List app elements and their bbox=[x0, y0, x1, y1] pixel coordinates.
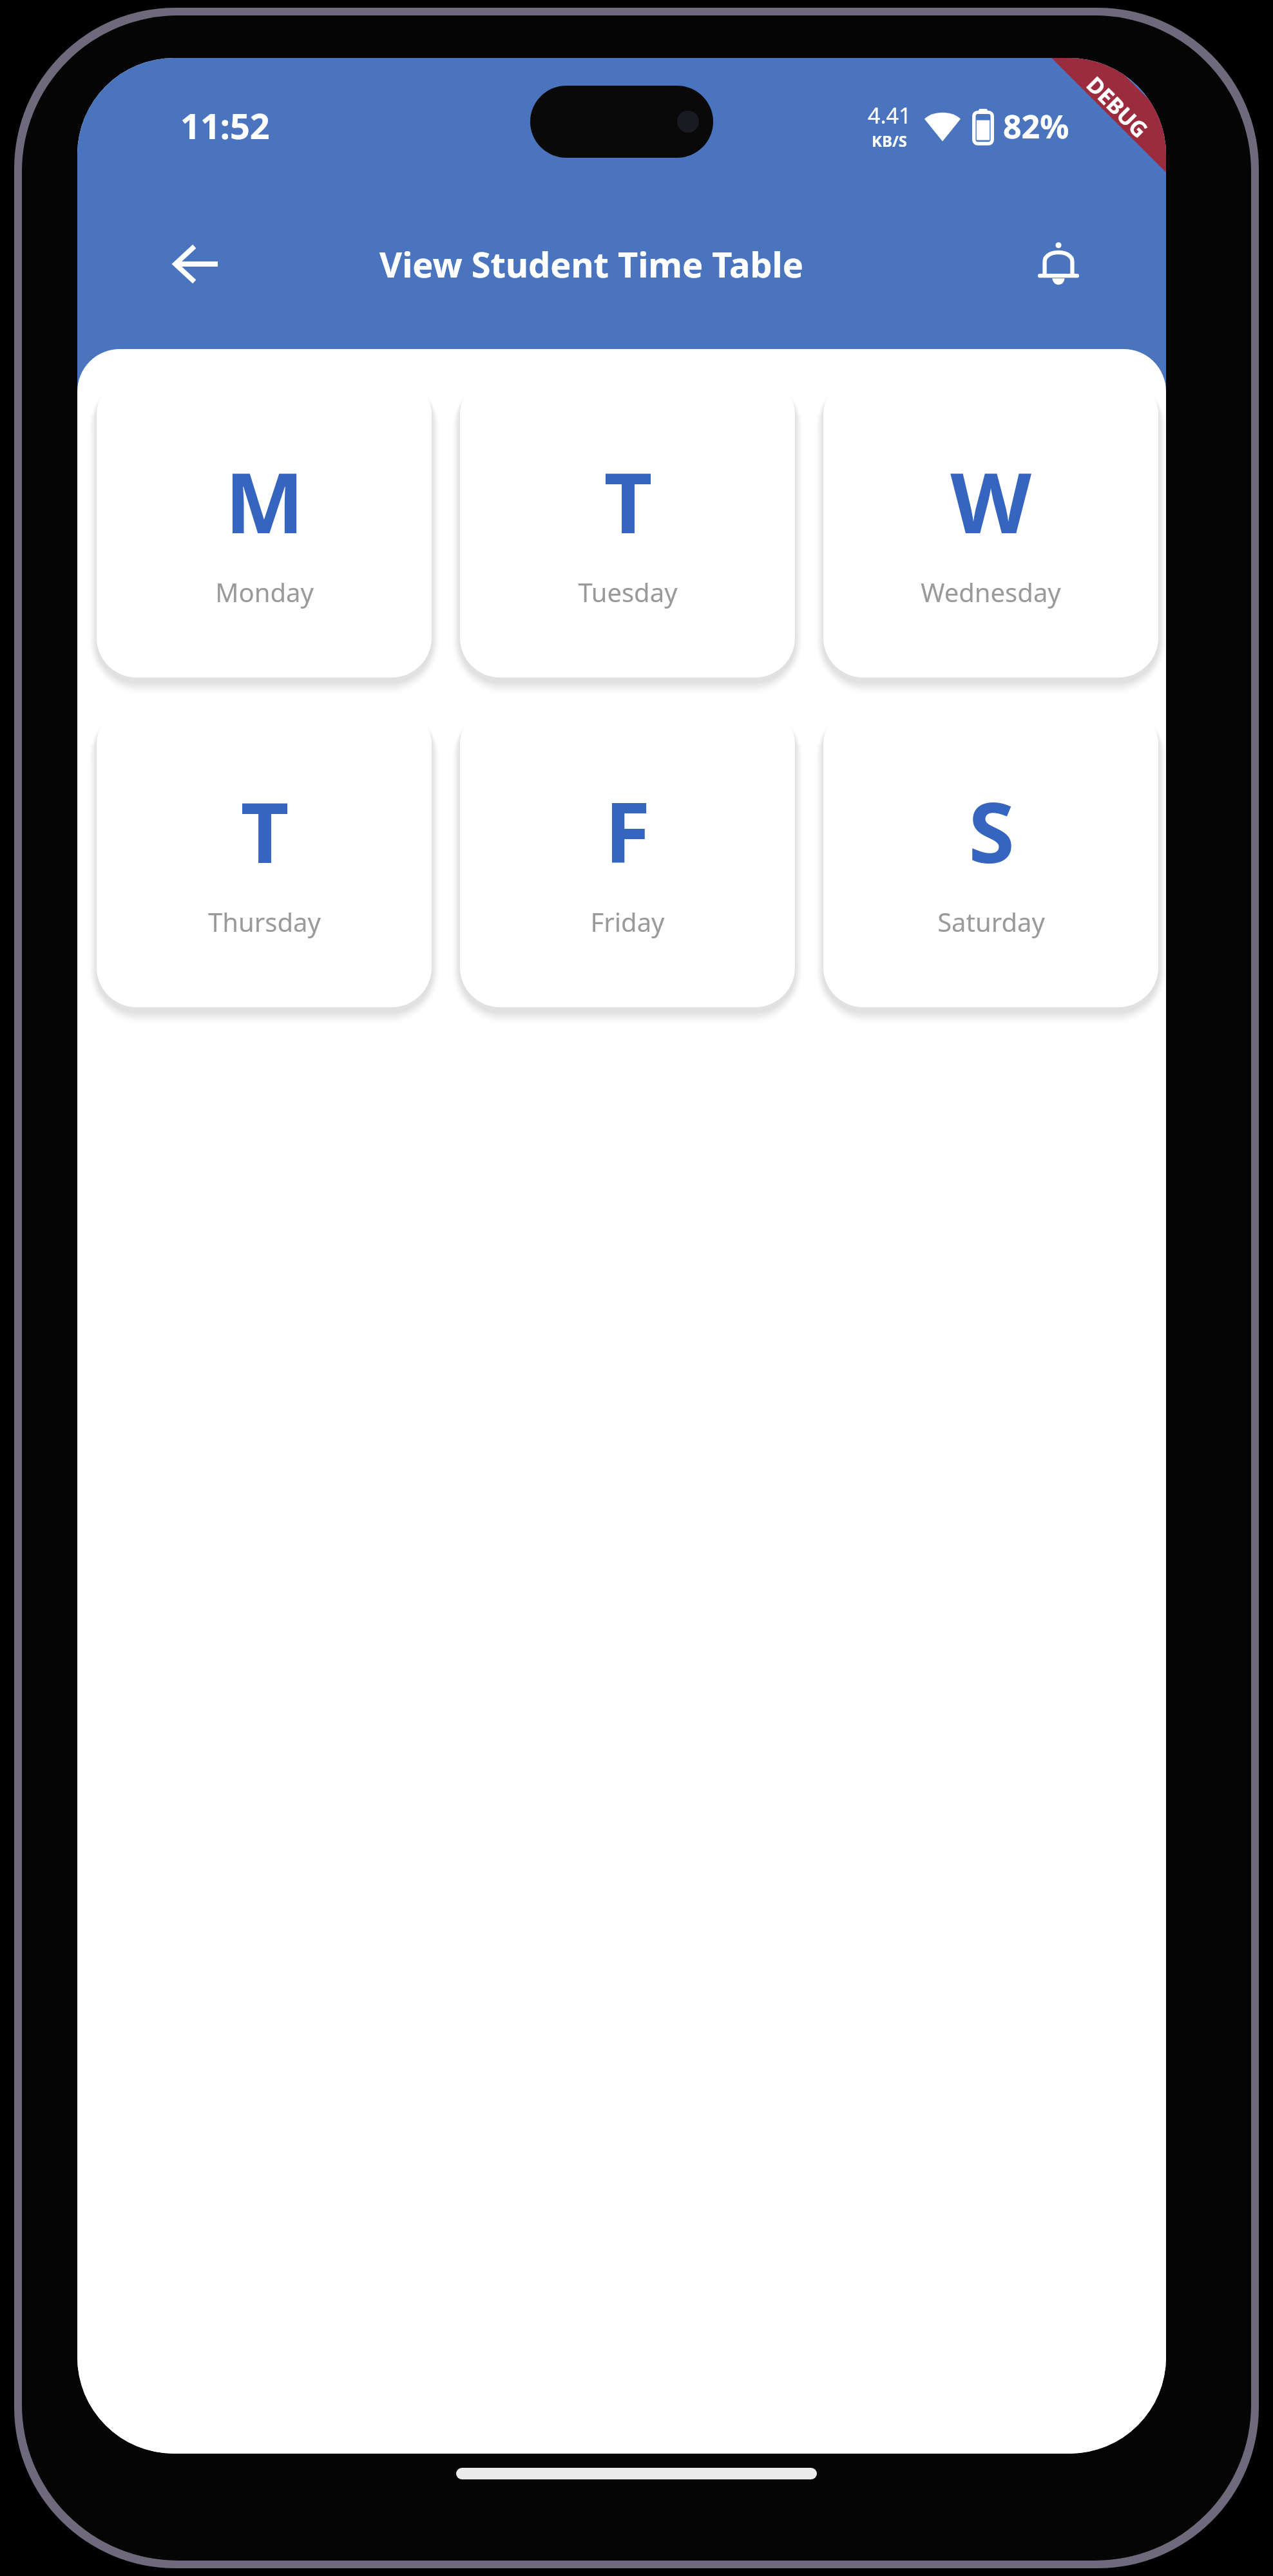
button[interactable]: W bbox=[823, 375, 1158, 677]
staticText: Monday bbox=[215, 574, 314, 609]
button[interactable]: Notifications bbox=[1019, 224, 1098, 304]
staticText: KB/S bbox=[872, 130, 908, 151]
button[interactable]: T bbox=[460, 375, 795, 677]
staticText: Wednesday bbox=[921, 574, 1061, 609]
staticText: W bbox=[950, 444, 1031, 558]
button[interactable]: T bbox=[97, 705, 432, 1007]
staticText: Thursday bbox=[208, 904, 321, 939]
staticText: DEBUG bbox=[1080, 70, 1155, 144]
button[interactable]: F bbox=[460, 705, 795, 1007]
staticText: View Student Time Table bbox=[379, 240, 803, 288]
button[interactable]: M bbox=[97, 375, 432, 677]
button[interactable]: Back bbox=[156, 224, 236, 304]
staticText: 11:52 bbox=[180, 102, 270, 149]
staticText: 4.41 bbox=[868, 100, 912, 130]
staticText: Tuesday bbox=[578, 574, 678, 609]
staticText: Friday bbox=[590, 904, 665, 939]
staticText: 82% bbox=[1003, 104, 1069, 148]
button[interactable]: S bbox=[823, 705, 1158, 1007]
staticText: F bbox=[604, 773, 651, 887]
staticText: M bbox=[225, 444, 304, 558]
staticText: T bbox=[240, 773, 289, 887]
staticText: S bbox=[968, 773, 1015, 887]
staticText: T bbox=[604, 444, 653, 558]
staticText: Saturday bbox=[937, 904, 1045, 939]
